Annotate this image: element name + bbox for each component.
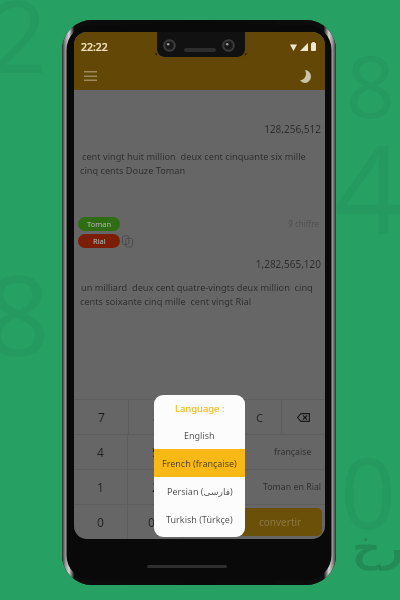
staticText: cinq cents Douze Toman bbox=[80, 164, 186, 177]
staticText: 00 bbox=[148, 514, 162, 530]
staticText: French (française) bbox=[162, 457, 237, 469]
staticText: 3 bbox=[207, 479, 214, 495]
staticText: cent vingt huit million deux cent cinqua… bbox=[82, 150, 306, 163]
button[interactable]: 00 bbox=[128, 505, 182, 539]
staticText: 6 bbox=[207, 444, 214, 460]
button[interactable]: French (française) bbox=[154, 449, 245, 477]
staticText: 4 bbox=[97, 444, 104, 460]
staticText: un milliard deux cent quatre-vingts deux… bbox=[81, 281, 313, 294]
staticText: C bbox=[256, 410, 263, 425]
button[interactable]: 1 bbox=[74, 470, 127, 504]
button[interactable]: 5 bbox=[128, 435, 182, 469]
staticText: Rial bbox=[93, 236, 106, 246]
staticText: 4 bbox=[334, 104, 400, 270]
staticText: 22:22 bbox=[81, 40, 108, 54]
staticText: Persian (فارسی) bbox=[167, 485, 233, 497]
button[interactable]: Open navigation menu bbox=[80, 66, 100, 86]
staticText: 000 bbox=[200, 514, 221, 530]
staticText: Toman en Rial bbox=[263, 481, 322, 493]
button[interactable]: Copy result bbox=[122, 236, 133, 247]
button[interactable]: 6 bbox=[183, 435, 237, 469]
button[interactable]: Clear bbox=[238, 400, 281, 434]
button[interactable]: française bbox=[238, 435, 325, 469]
button[interactable]: Rial bbox=[78, 234, 120, 248]
staticText: 1 bbox=[97, 479, 104, 495]
button[interactable]: Turkish (Türkçe) bbox=[154, 505, 245, 533]
staticText: English bbox=[184, 429, 215, 441]
button[interactable]: 7 bbox=[74, 400, 128, 434]
staticText: 8 bbox=[153, 409, 160, 425]
button[interactable]: Toman bbox=[78, 217, 120, 231]
staticText: 0 bbox=[97, 514, 104, 530]
button[interactable]: Persian (فارسی) bbox=[154, 477, 245, 505]
staticText: cents soixante cinq mille cent vingt Ria… bbox=[80, 295, 252, 308]
staticText: Toman bbox=[87, 219, 112, 229]
button[interactable]: convertir bbox=[239, 508, 322, 536]
button[interactable]: 9 bbox=[184, 400, 237, 434]
button[interactable]: Toggle dark mode bbox=[296, 66, 316, 86]
staticText: convertir bbox=[259, 515, 302, 529]
staticText: française bbox=[274, 446, 312, 458]
staticText: 128,256,512 bbox=[74, 122, 321, 136]
button[interactable]: Toman en Rial bbox=[238, 470, 325, 504]
staticText: 7 bbox=[98, 409, 105, 425]
staticText: نرخ bbox=[352, 524, 400, 571]
button[interactable]: 2 bbox=[128, 470, 182, 504]
staticText: 1,282,565,120 bbox=[74, 257, 321, 271]
staticText: Turkish (Türkçe) bbox=[166, 513, 233, 525]
button[interactable]: Backspace bbox=[282, 400, 325, 434]
staticText: Language : bbox=[175, 402, 225, 415]
staticText: 9 chiffre bbox=[74, 218, 319, 229]
staticText: 9 bbox=[207, 409, 214, 425]
button[interactable]: 000 bbox=[183, 505, 237, 539]
staticText: 0 bbox=[340, 424, 397, 557]
button[interactable]: 0 bbox=[74, 505, 127, 539]
button[interactable]: English bbox=[154, 421, 245, 449]
button[interactable]: 8 bbox=[129, 400, 183, 434]
staticText: 2 bbox=[152, 479, 159, 495]
button[interactable]: 4 bbox=[74, 435, 127, 469]
button[interactable]: 3 bbox=[183, 470, 237, 504]
staticText: 5 bbox=[152, 444, 159, 460]
